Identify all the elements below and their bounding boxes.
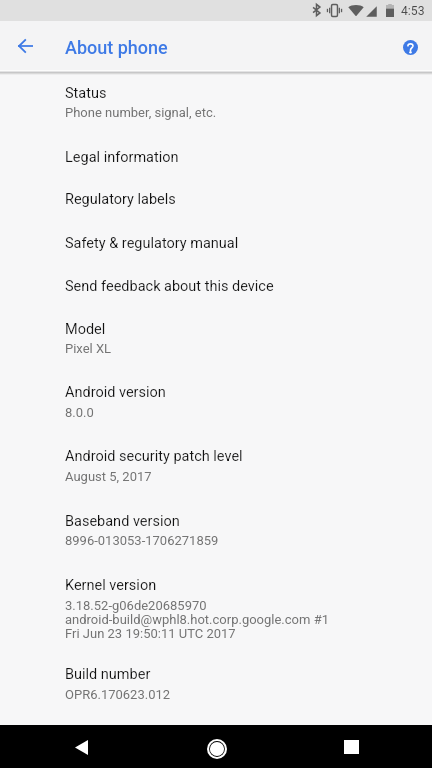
button[interactable]: Regulatory labels [0,183,432,226]
button[interactable]: Help [388,25,432,69]
button[interactable]: Baseband version [0,504,432,556]
staticText: android-build@wphl8.hot.corp.google.com … [65,612,329,627]
staticText: Fri Jun 23 19:50:11 UTC 2017 [65,626,236,641]
button[interactable]: Android version [0,376,432,428]
staticText: Regulatory labels [65,191,176,208]
button[interactable]: Safety & regulatory manual [0,226,432,269]
staticText: Phone number, signal, etc. [65,105,217,120]
button[interactable]: Home [192,725,240,768]
staticText: 3.18.52-g06de20685970 [65,598,207,613]
staticText: Baseband version [65,513,180,530]
staticText: About phone [65,37,168,58]
staticText: Safety & regulatory manual [65,235,239,252]
button[interactable]: Android security patch level [0,440,432,492]
staticText: Build number [65,666,151,683]
button[interactable]: About phone [65,37,168,58]
staticText: Status [65,85,107,102]
staticText: OPR6.170623.012 [65,687,171,702]
button[interactable]: Kernel version [0,568,432,646]
button[interactable]: Back [57,725,105,768]
staticText: 8996-013053-1706271859 [65,533,219,548]
staticText: August 5, 2017 [65,469,152,484]
button[interactable]: Navigate up [6,24,50,68]
staticText: Send feedback about this device [65,278,274,295]
button[interactable]: Status [0,74,432,126]
button[interactable]: Model [0,312,432,364]
button[interactable]: Recent apps [327,725,375,768]
staticText: Pixel XL [65,341,112,356]
staticText: 8.0.0 [65,405,94,420]
staticText: Legal information [65,149,179,166]
staticText: Model [65,321,106,338]
staticText: 4:53 [401,4,425,18]
staticText: Android security patch level [65,448,243,465]
button[interactable]: Send feedback about this device [0,269,432,312]
button[interactable]: Legal information [0,140,432,183]
staticText: Kernel version [65,577,157,594]
button[interactable]: Build number [0,657,432,709]
staticText: Android version [65,384,166,401]
